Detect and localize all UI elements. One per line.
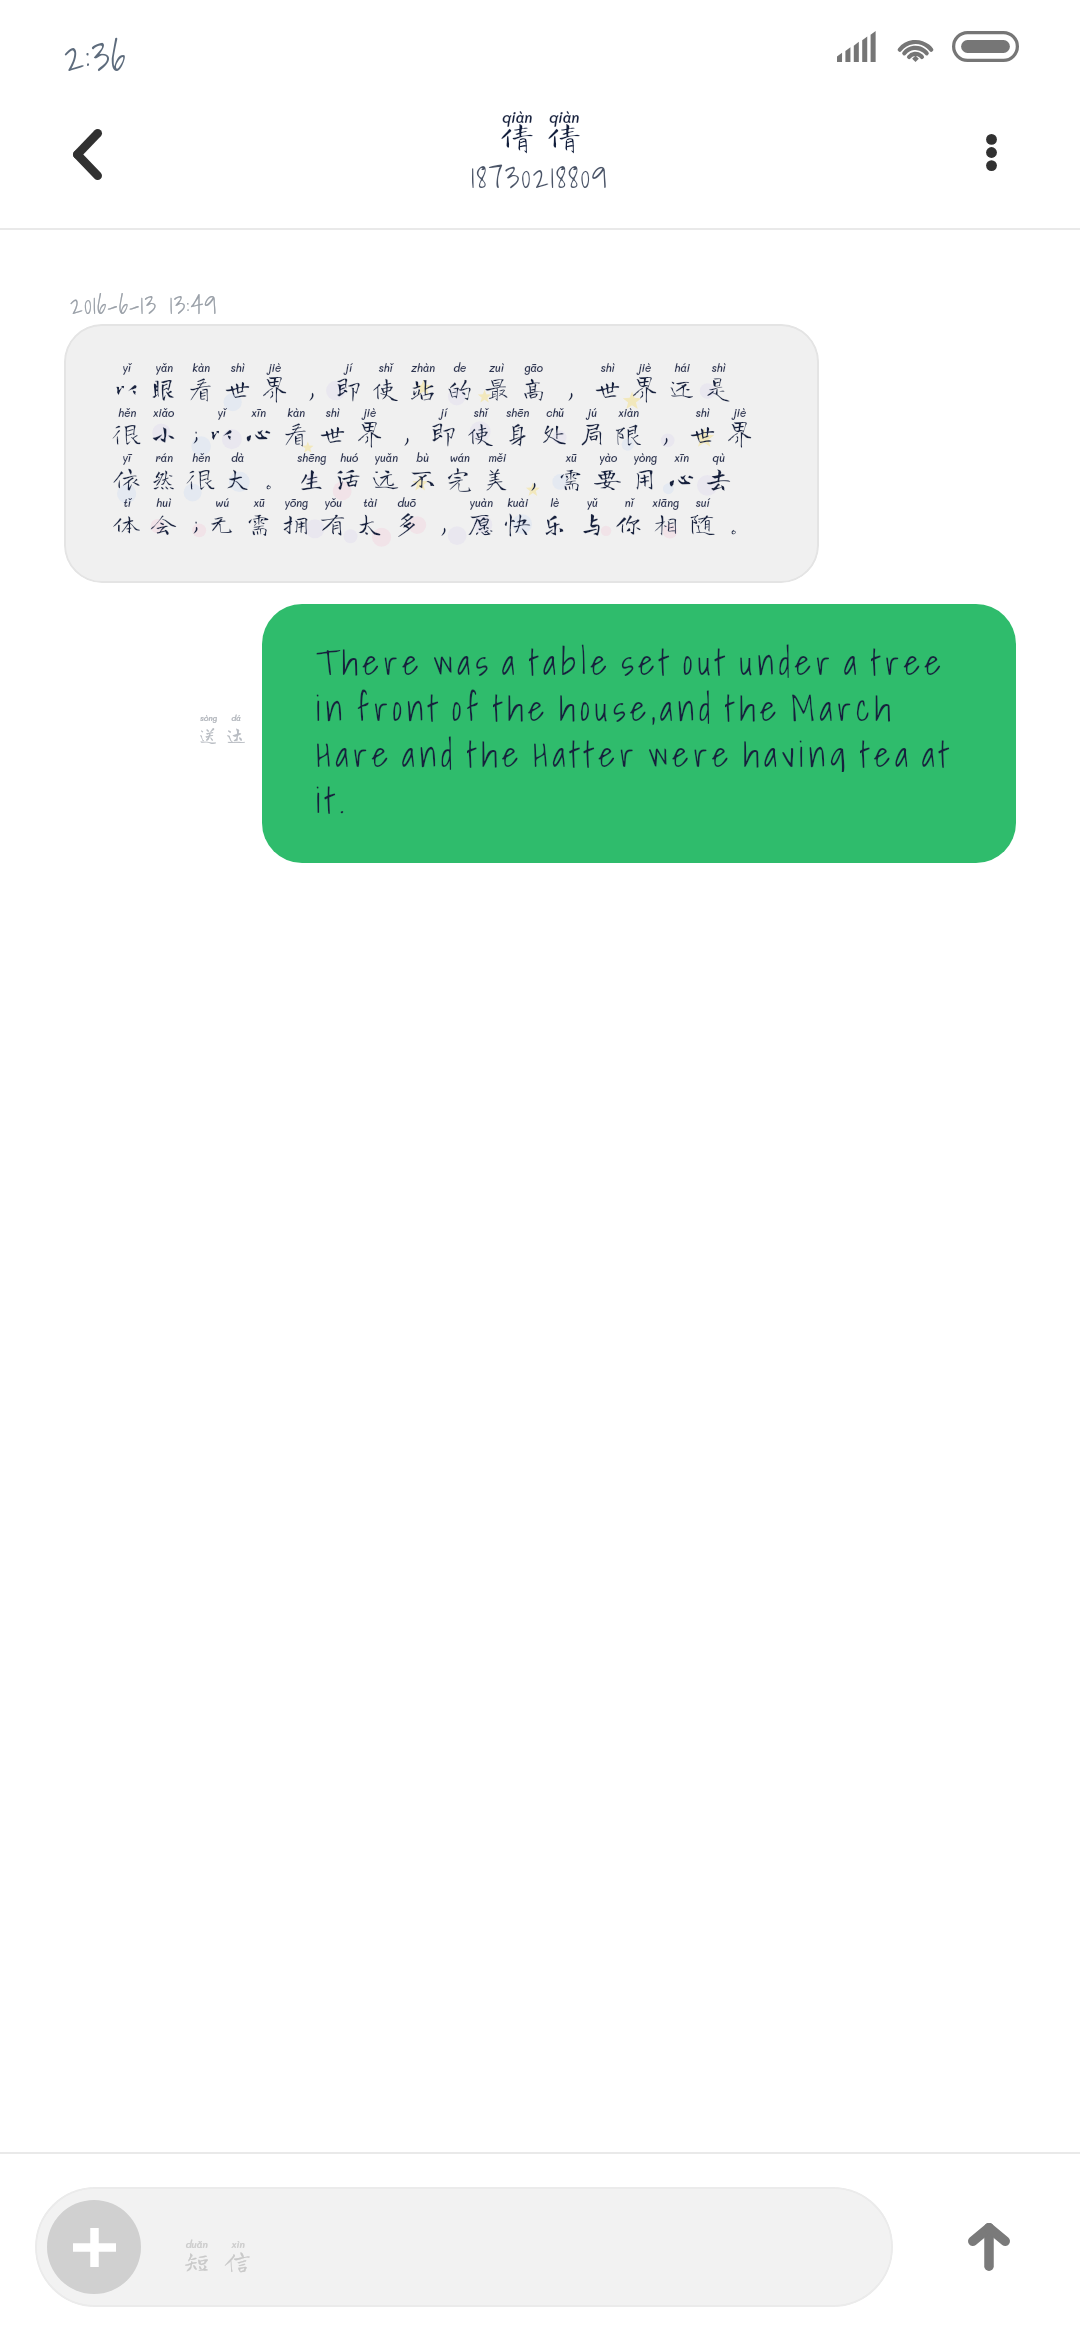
staticText: 2016-6-13 13:49 [70, 285, 218, 325]
staticText: kuài [507, 495, 528, 509]
staticText: jiè [268, 360, 281, 374]
staticText: huì [156, 495, 171, 509]
staticText: kàn [192, 360, 210, 374]
staticText: měi [488, 450, 506, 464]
staticText: rán [155, 450, 173, 464]
staticText: 2:36 [64, 24, 127, 88]
staticText: xū [253, 495, 265, 509]
button[interactable]: More options [943, 102, 1039, 202]
staticText: yǔ [586, 495, 598, 509]
button[interactable]: Add attachment [47, 2200, 141, 2294]
staticText: dà [231, 450, 244, 464]
staticText: chǔ [546, 405, 564, 419]
staticText: 即 [430, 419, 457, 446]
staticText: xū [565, 450, 577, 464]
staticText: zhàn [411, 360, 435, 374]
button[interactable]: Add attachment [35, 2187, 893, 2307]
staticText: in [316, 680, 348, 726]
staticText: 快 [504, 509, 531, 536]
staticText: 站 [409, 374, 436, 401]
staticText: 达 [226, 724, 246, 744]
staticText: 依 [113, 464, 140, 491]
staticText: 信 [224, 2247, 251, 2273]
staticText: was [433, 634, 493, 680]
staticText: a [502, 634, 520, 680]
staticText: lè [550, 495, 559, 509]
staticText: tǐ [123, 495, 131, 509]
staticText: 相 [652, 509, 679, 536]
staticText: shì [711, 360, 726, 374]
staticText: zuì [489, 360, 504, 374]
staticText: 是 [705, 374, 732, 401]
staticText: 用 [631, 464, 658, 491]
staticText: 多 [393, 509, 420, 536]
button[interactable]: There [262, 604, 1016, 863]
staticText: at [922, 726, 954, 772]
staticText: ， [652, 419, 679, 446]
staticText: 世 [224, 374, 251, 401]
staticText: 处 [541, 419, 568, 446]
staticText: jiè [638, 360, 651, 374]
staticText: bù [416, 450, 429, 464]
staticText: 以 [208, 419, 235, 446]
staticText: gāo [524, 360, 543, 374]
staticText: ； [182, 509, 203, 536]
staticText: 看 [282, 419, 309, 446]
staticText: 。 [726, 509, 753, 536]
button[interactable]: Back [39, 104, 135, 204]
staticText: suí [695, 495, 710, 509]
staticText: There [316, 634, 424, 680]
staticText: 界 [726, 419, 753, 446]
staticText: Hatter [533, 726, 639, 772]
staticText: dá [231, 713, 241, 723]
staticText: xīn [251, 405, 266, 419]
staticText: ， [298, 374, 325, 401]
staticText: jú [587, 405, 597, 419]
staticText: set [621, 634, 674, 680]
staticText: of [452, 680, 484, 726]
staticText: shì [695, 405, 710, 419]
staticText: 送 [198, 724, 218, 744]
staticText: 即 [335, 374, 362, 401]
staticText: xiāng [652, 495, 679, 509]
staticText: 美 [483, 464, 510, 491]
staticText: tea [860, 726, 913, 772]
button[interactable]: yǐ [64, 324, 819, 583]
staticText: tree [871, 634, 946, 680]
staticText: yǒu [324, 495, 342, 509]
staticText: 无 [208, 509, 235, 536]
staticText: shì [325, 405, 340, 419]
staticText: ； [182, 419, 203, 446]
staticText: 去 [705, 464, 732, 491]
button[interactable]: Send [938, 2196, 1040, 2298]
staticText: shǐ [378, 360, 393, 374]
staticText: tài [363, 495, 377, 509]
staticText: 大 [224, 464, 251, 491]
staticText: 需 [557, 464, 584, 491]
staticText: the [467, 726, 524, 772]
staticText: xiàn [618, 405, 639, 419]
staticText: 心 [245, 419, 272, 446]
staticText: 远 [372, 464, 399, 491]
staticText: 还 [668, 374, 695, 401]
staticText: ， [393, 419, 420, 446]
staticText: 世 [689, 419, 716, 446]
staticText: it. [316, 772, 349, 818]
staticText: front [357, 680, 443, 726]
staticText: 限 [615, 419, 642, 446]
staticText: 随 [689, 509, 716, 536]
staticText: 有 [319, 509, 346, 536]
staticText: xiǎo [153, 405, 174, 419]
staticText: huó [340, 450, 358, 464]
staticText: and [402, 726, 458, 772]
staticText: the [493, 680, 550, 726]
staticText: de [453, 360, 466, 374]
staticText: 的 [446, 374, 473, 401]
staticText: were [648, 726, 734, 772]
staticText: ， [430, 509, 457, 536]
staticText: yī [122, 450, 131, 464]
staticText: kàn [287, 405, 305, 419]
staticText: duō [397, 495, 416, 509]
staticText: 使 [467, 419, 494, 446]
staticText: shǐ [473, 405, 488, 419]
